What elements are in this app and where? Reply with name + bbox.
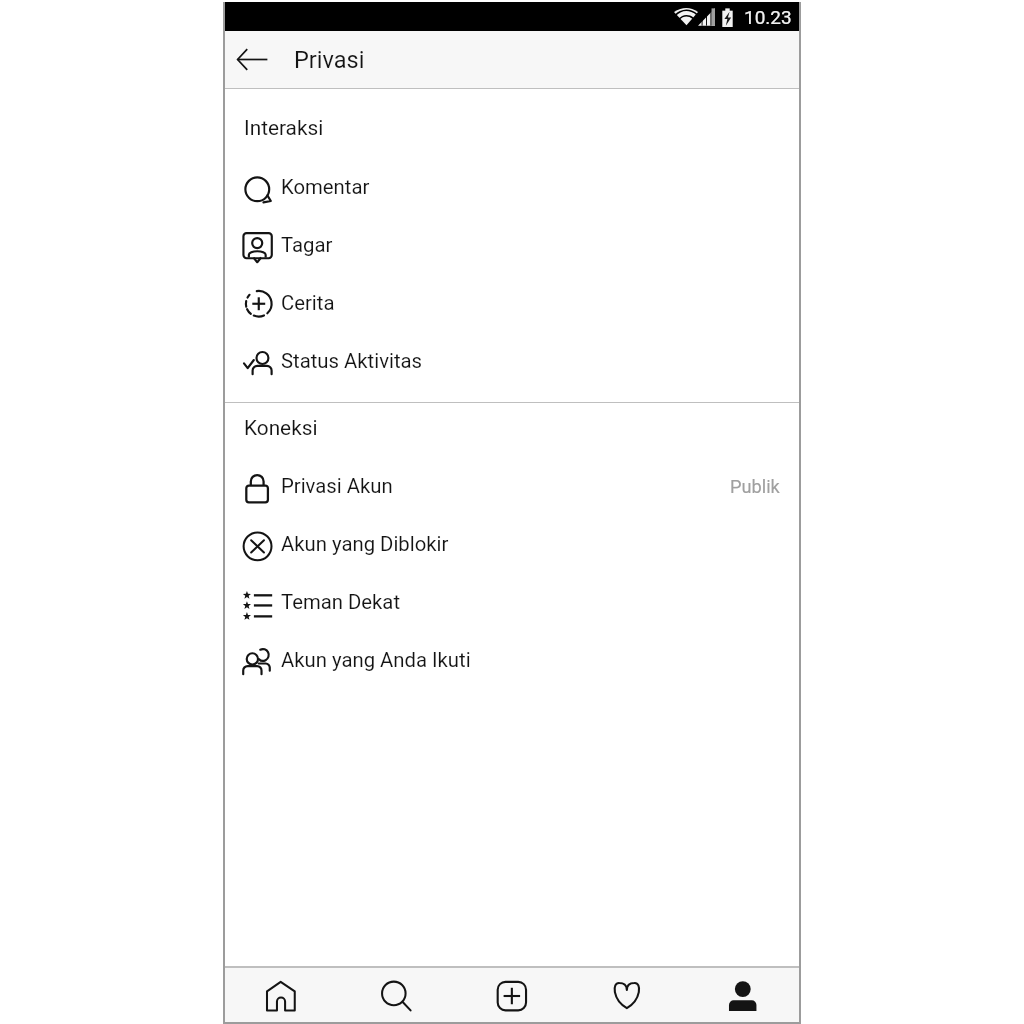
staticText: Tagar [281,233,333,257]
button[interactable]: Komentar [225,158,799,216]
staticText: Koneksi [244,416,318,440]
button[interactable]: Home [225,968,339,1022]
staticText: Publik [730,476,780,497]
staticText: Teman Dekat [281,590,401,614]
staticText: Interaksi [244,116,324,140]
button[interactable]: Teman Dekat [225,573,799,631]
button[interactable]: Create [454,968,569,1022]
staticText: Akun yang Anda Ikuti [281,648,471,672]
staticText: Cerita [281,291,335,315]
button[interactable]: Tagar [225,216,799,274]
button[interactable]: Search [339,968,454,1022]
button[interactable]: Activity [569,968,684,1022]
staticText: Status Aktivitas [281,349,423,373]
button[interactable]: Akun yang Diblokir [225,515,799,573]
button[interactable]: Akun yang Anda Ikuti [225,631,799,689]
staticText: Akun yang Diblokir [281,532,449,556]
staticText: Privasi Akun [281,474,393,498]
button[interactable]: Cerita [225,274,799,332]
button[interactable]: Back [225,31,279,88]
staticText: Privasi [294,46,365,74]
button[interactable]: Privasi Akun [225,457,799,515]
button[interactable]: Status Aktivitas [225,332,799,390]
staticText: Komentar [281,175,370,199]
button[interactable]: Profile [684,968,799,1022]
staticText: 10.23 [744,6,792,28]
